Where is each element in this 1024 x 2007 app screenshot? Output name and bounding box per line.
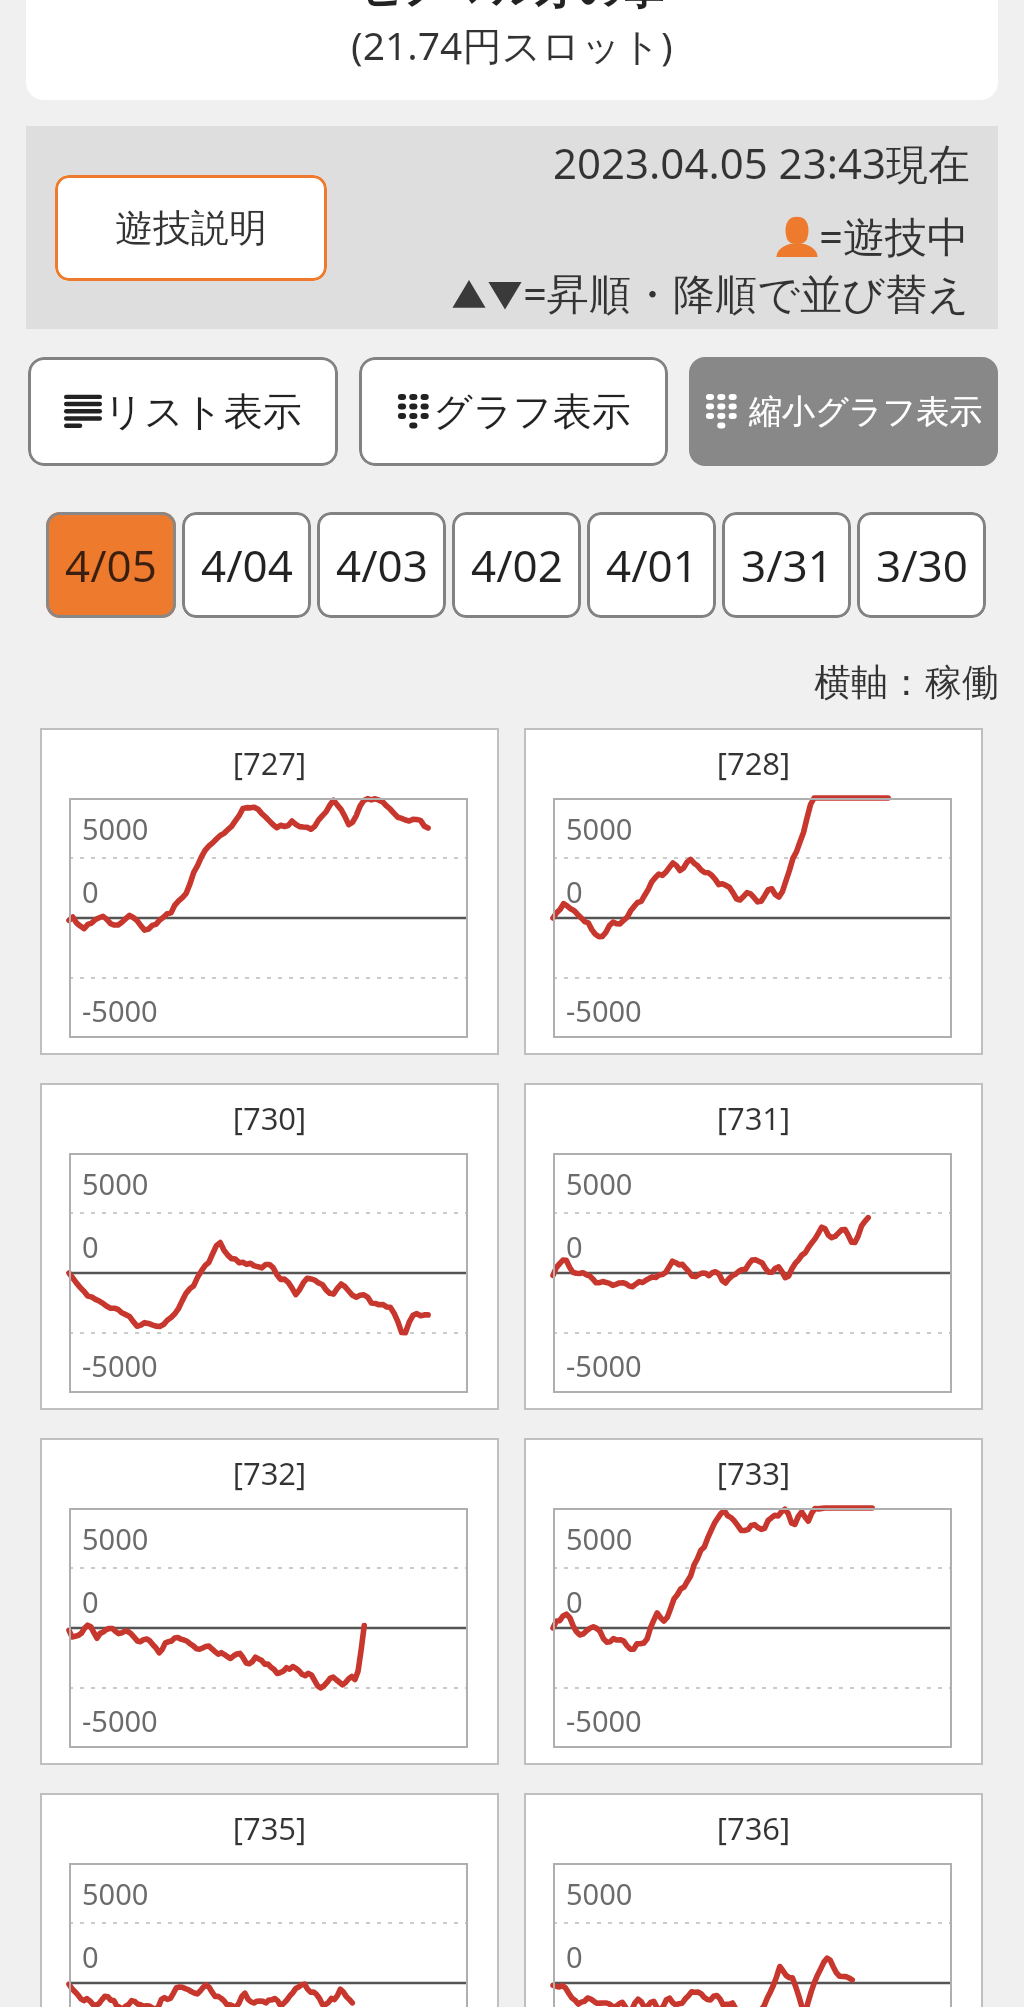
- staticText: 0: [566, 1582, 583, 1621]
- staticText: -5000: [566, 1346, 642, 1385]
- button[interactable]: グラフ表示: [359, 357, 668, 466]
- staticText: リスト表示: [104, 387, 302, 436]
- button[interactable]: [727]: [40, 728, 499, 1055]
- button[interactable]: 縮小グラフ表示: [689, 357, 998, 466]
- button[interactable]: 4/05: [46, 512, 176, 618]
- staticText: 2023.04.05 23:43現在: [553, 134, 970, 191]
- staticText: 4/03: [336, 535, 428, 595]
- button[interactable]: 3/31: [722, 512, 851, 618]
- button[interactable]: 3/30: [857, 512, 986, 618]
- staticText: 4/04: [201, 535, 293, 595]
- staticText: 0: [566, 1227, 583, 1266]
- staticText: 5000: [566, 1519, 633, 1558]
- staticText: [727]: [40, 742, 499, 784]
- button[interactable]: [728]: [524, 728, 983, 1055]
- staticText: [728]: [524, 742, 983, 784]
- other: 降順: [487, 270, 523, 316]
- other: 昇順: [451, 270, 487, 316]
- staticText: ヒノマル牙の拳: [359, 0, 666, 16]
- staticText: 遊技説明: [115, 204, 267, 252]
- button[interactable]: [732]: [40, 1438, 499, 1765]
- button[interactable]: 4/03: [317, 512, 446, 618]
- button[interactable]: 4/04: [182, 512, 311, 618]
- staticText: [731]: [524, 1097, 983, 1139]
- button[interactable]: [731]: [524, 1083, 983, 1410]
- staticText: 5000: [566, 1874, 633, 1913]
- staticText: [730]: [40, 1097, 499, 1139]
- staticText: 4/05: [65, 535, 157, 595]
- staticText: 3/30: [876, 535, 968, 595]
- button[interactable]: [733]: [524, 1438, 983, 1765]
- staticText: 0: [82, 872, 99, 911]
- staticText: (21.74円スロット): [351, 18, 673, 71]
- staticText: -5000: [82, 1701, 158, 1740]
- button[interactable]: 遊技説明: [55, 175, 327, 281]
- staticText: 0: [566, 1937, 583, 1976]
- staticText: 0: [82, 1582, 99, 1621]
- staticText: 5000: [82, 1164, 149, 1203]
- staticText: [733]: [524, 1452, 983, 1494]
- button[interactable]: [735]: [40, 1793, 499, 2007]
- staticText: -5000: [566, 1701, 642, 1740]
- staticText: [732]: [40, 1452, 499, 1494]
- staticText: -5000: [82, 991, 158, 1030]
- staticText: -5000: [82, 1346, 158, 1385]
- staticText: [735]: [40, 1807, 499, 1849]
- other: 遊技中: [775, 214, 819, 258]
- staticText: 3/31: [741, 535, 833, 595]
- staticText: グラフ表示: [433, 387, 631, 436]
- staticText: 0: [82, 1227, 99, 1266]
- staticText: 5000: [82, 809, 149, 848]
- staticText: =遊技中: [819, 207, 970, 264]
- staticText: 5000: [82, 1519, 149, 1558]
- staticText: 5000: [82, 1874, 149, 1913]
- staticText: 0: [566, 872, 583, 911]
- staticText: -5000: [566, 991, 642, 1030]
- button[interactable]: [736]: [524, 1793, 983, 2007]
- button[interactable]: リスト表示: [28, 357, 338, 466]
- button[interactable]: [730]: [40, 1083, 499, 1410]
- staticText: 0: [82, 1937, 99, 1976]
- button[interactable]: 4/02: [452, 512, 581, 618]
- staticText: 4/01: [606, 535, 698, 595]
- staticText: =昇順・降順で並び替え: [523, 264, 970, 321]
- staticText: 縮小グラフ表示: [749, 391, 983, 433]
- button[interactable]: 4/01: [587, 512, 716, 618]
- staticText: 5000: [566, 809, 633, 848]
- staticText: 横軸：稼働: [814, 659, 999, 706]
- staticText: 5000: [566, 1164, 633, 1203]
- staticText: [736]: [524, 1807, 983, 1849]
- staticText: 4/02: [471, 535, 563, 595]
